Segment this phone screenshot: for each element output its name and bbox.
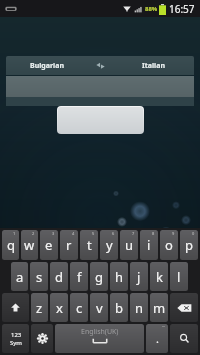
button[interactable]: a (11, 262, 28, 291)
staticText: x (56, 299, 63, 317)
staticText: 5 (92, 231, 95, 236)
button[interactable]: m (150, 293, 168, 322)
button[interactable]: 7 (120, 230, 138, 260)
staticText: u (125, 236, 134, 254)
button[interactable]: z (31, 293, 48, 322)
button[interactable]: c (70, 293, 88, 322)
button[interactable]: d (50, 262, 68, 291)
staticText: t (87, 236, 92, 254)
button[interactable]: 0 (180, 230, 198, 260)
button[interactable]: Shift (2, 293, 29, 322)
button[interactable]: 1 (2, 230, 19, 260)
staticText: 123 (11, 331, 22, 339)
button[interactable]: 4 (60, 230, 78, 260)
staticText: r (66, 236, 72, 254)
staticText: Sym (10, 339, 22, 347)
staticText: 1 (13, 231, 16, 236)
staticText: d (55, 268, 63, 286)
staticText: 88% (145, 5, 158, 13)
staticText: j (137, 268, 141, 286)
staticText: '" (162, 325, 165, 330)
staticText: g (95, 268, 103, 286)
staticText: 2 (32, 231, 35, 236)
staticText: 16:57 (169, 2, 195, 16)
staticText: q (7, 236, 15, 254)
staticText: English(UK) (81, 327, 119, 337)
button[interactable]: l (170, 262, 188, 291)
staticText: o (165, 236, 173, 254)
button[interactable]: k (150, 262, 168, 291)
staticText: s (36, 268, 43, 286)
staticText: p (185, 236, 193, 254)
staticText: w (24, 236, 35, 254)
button[interactable]: h (110, 262, 128, 291)
button[interactable]: Settings (31, 324, 53, 353)
button[interactable]: 9 (160, 230, 178, 260)
button[interactable]: Backspace (170, 293, 198, 322)
staticText: z (36, 299, 43, 317)
staticText: h (115, 268, 124, 286)
staticText: e (45, 236, 53, 254)
staticText: k (156, 268, 163, 286)
staticText: 9 (172, 231, 175, 236)
button[interactable]: s (30, 262, 48, 291)
button[interactable]: Italian (113, 56, 194, 75)
staticText: y (106, 236, 113, 254)
staticText: m (153, 299, 166, 317)
staticText: v (96, 299, 103, 317)
staticText: 8 (152, 231, 155, 236)
button[interactable]: 123 (2, 324, 29, 353)
button[interactable]: Search (170, 324, 198, 353)
button[interactable]: j (130, 262, 148, 291)
button[interactable]: Bulgarian (6, 56, 87, 75)
button[interactable]: x (50, 293, 68, 322)
staticText: i (147, 236, 151, 254)
button[interactable]: 3 (40, 230, 58, 260)
staticText: Bulgarian (30, 61, 64, 71)
button[interactable]: Swap languages (87, 56, 113, 75)
staticText: f (77, 268, 82, 286)
button[interactable]: b (110, 293, 128, 322)
staticText: . (156, 331, 159, 346)
staticText: 6 (112, 231, 115, 236)
button[interactable]: 5 (80, 230, 98, 260)
button[interactable]: Space (55, 324, 144, 353)
button[interactable]: v (90, 293, 108, 322)
staticText: Italian (142, 61, 165, 71)
staticText: a (16, 268, 24, 286)
staticText: b (115, 299, 123, 317)
button[interactable]: f (70, 262, 88, 291)
staticText: l (177, 268, 181, 286)
staticText: 0 (192, 231, 195, 236)
staticText: 3 (52, 231, 55, 236)
button[interactable]: n (130, 293, 148, 322)
button[interactable]: g (90, 262, 108, 291)
staticText: 7 (132, 231, 135, 236)
button[interactable]: 8 (140, 230, 158, 260)
button[interactable]: '" (146, 324, 168, 353)
button[interactable]: 2 (21, 230, 38, 260)
staticText: c (76, 299, 83, 317)
staticText: n (135, 299, 144, 317)
button[interactable]: 6 (100, 230, 118, 260)
staticText: 4 (72, 231, 75, 236)
